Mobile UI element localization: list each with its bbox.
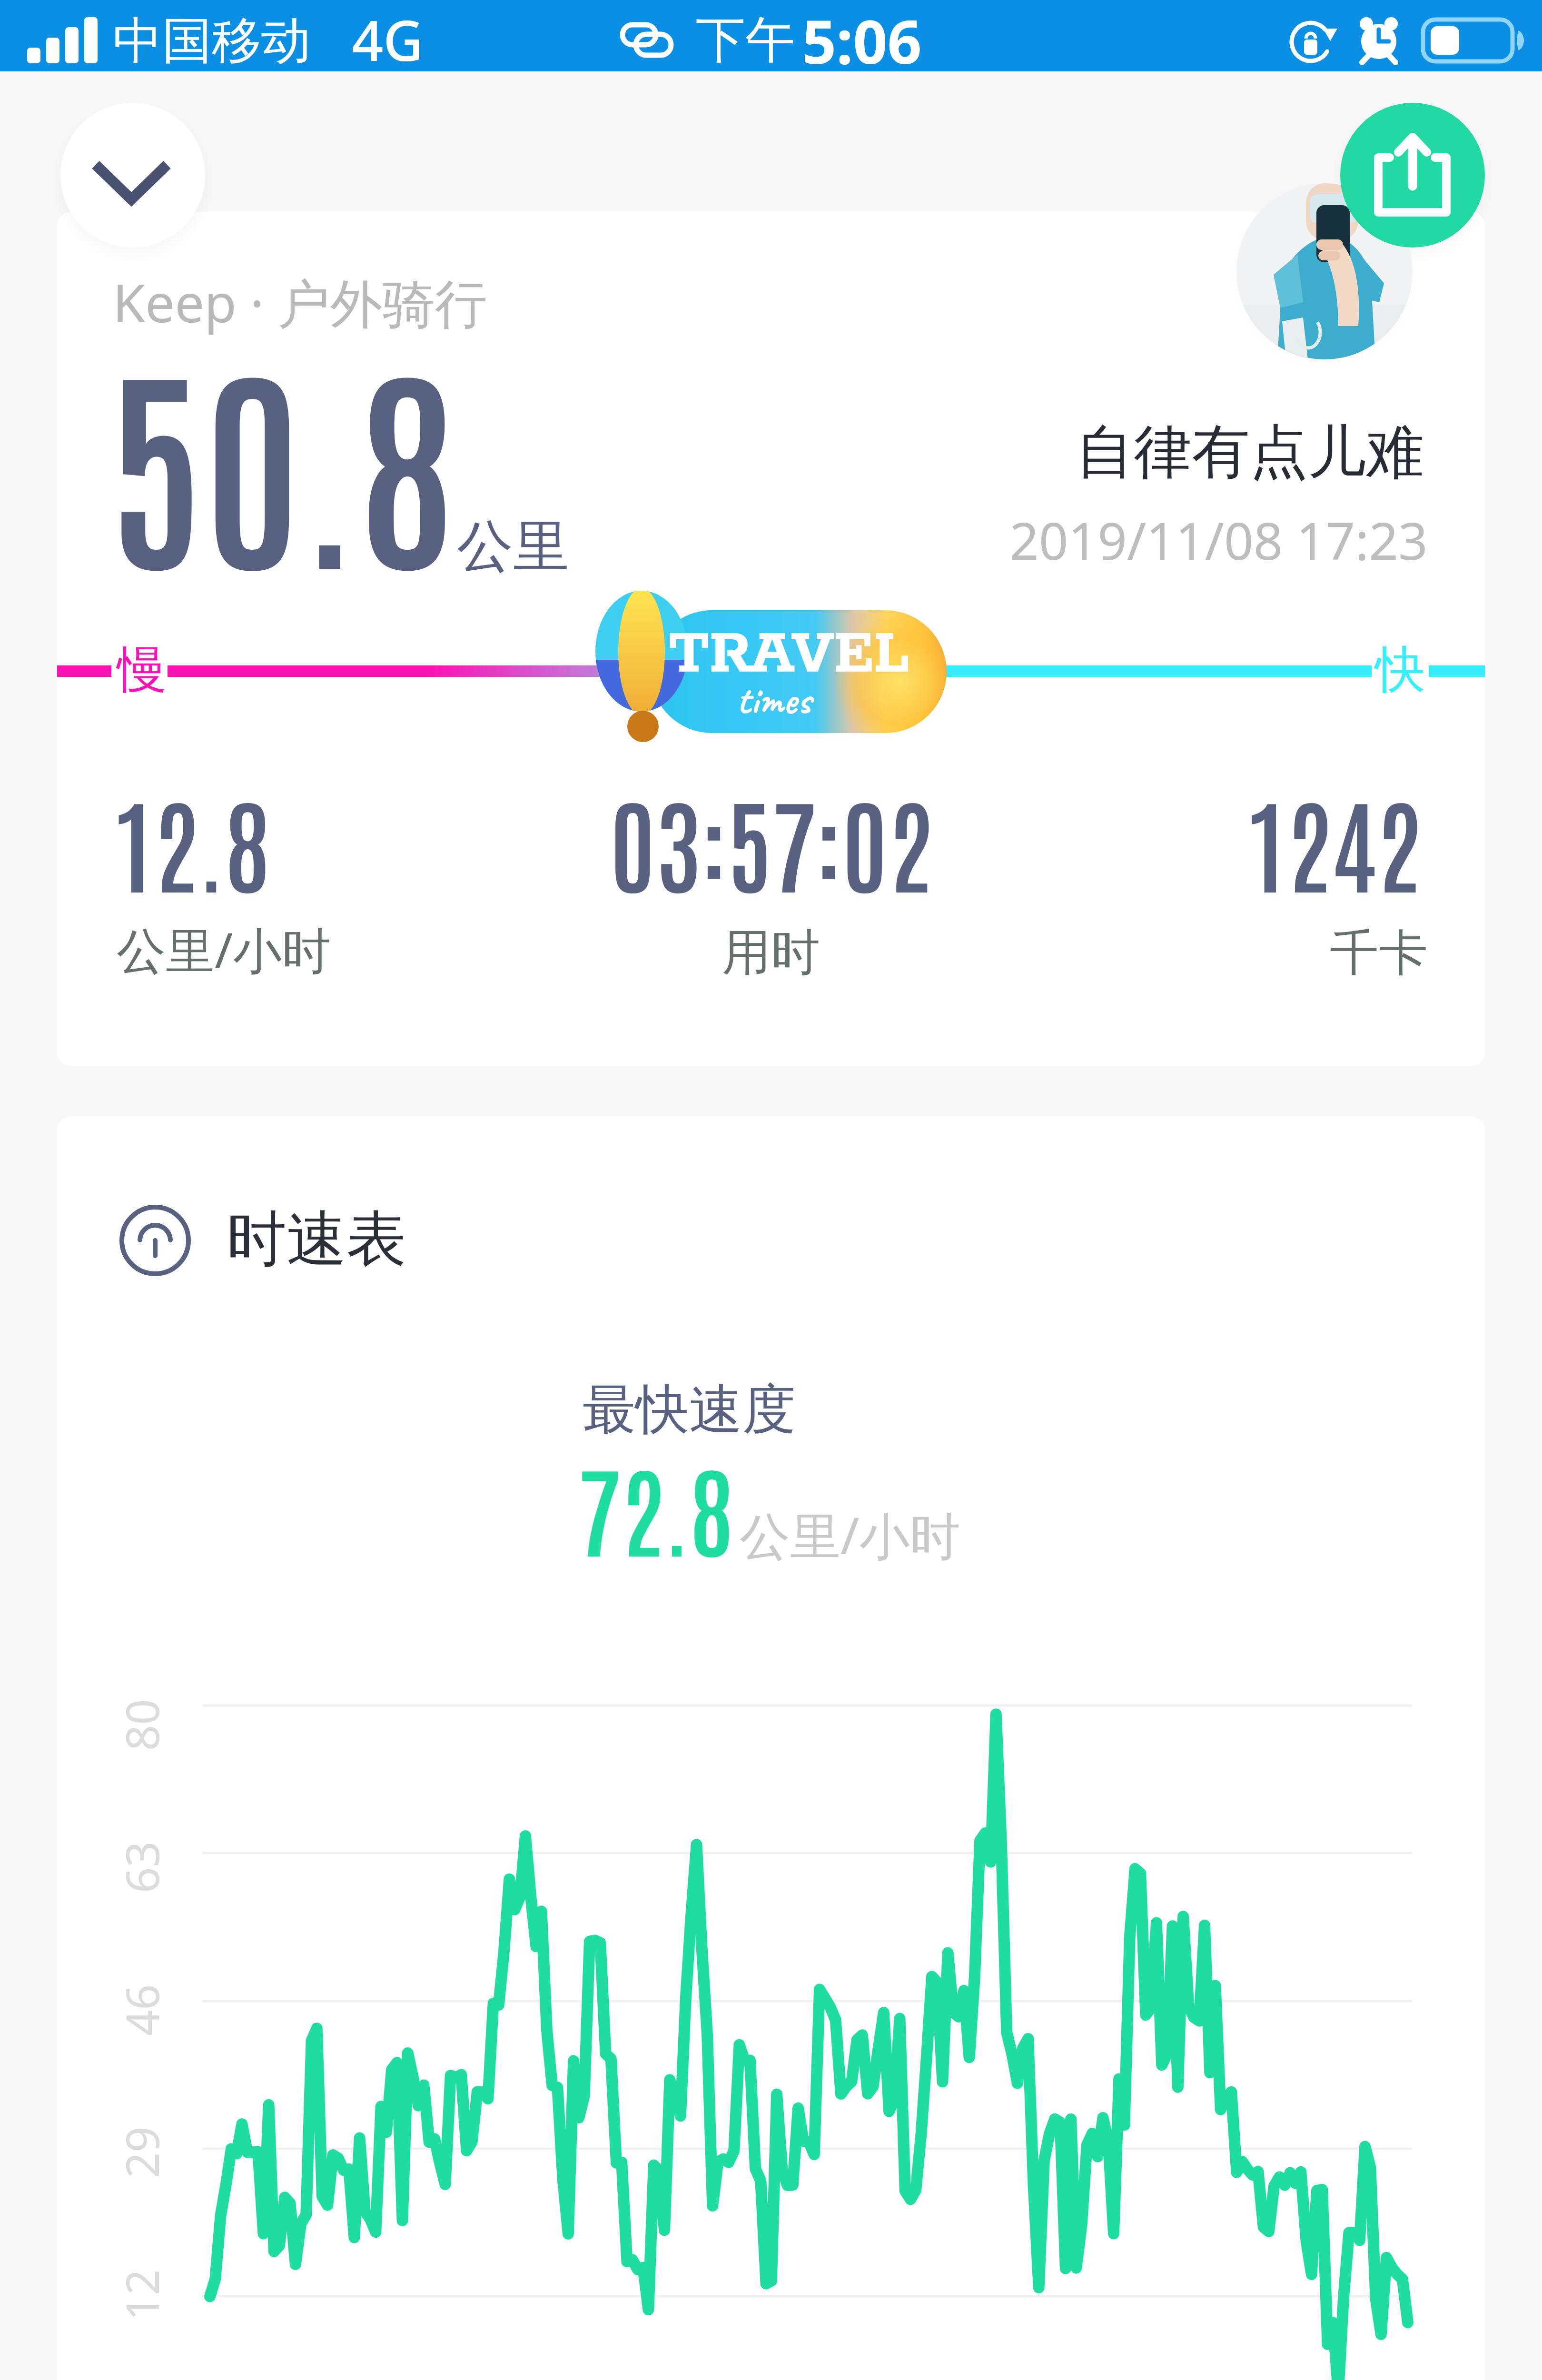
- staticText: 千卡: [1330, 922, 1428, 984]
- staticText: 自律有点儿难: [1076, 416, 1424, 489]
- staticText: 公里/小时: [740, 1500, 960, 1569]
- staticText: 用时: [722, 922, 820, 984]
- staticText: 5:06: [802, 0, 922, 71]
- staticText: TRAVEL: [669, 618, 910, 693]
- staticText: 46: [110, 1984, 172, 2036]
- staticText: 中国移动: [113, 10, 311, 72]
- button[interactable]: Collapse: [60, 103, 205, 248]
- staticText: 最快速度: [583, 1376, 796, 1443]
- staticText: 公里: [457, 511, 569, 582]
- staticText: 29: [110, 2126, 172, 2178]
- button[interactable]: Profile photo: [1236, 183, 1413, 359]
- staticText: Keep · 户外骑行: [113, 266, 487, 337]
- staticText: 12.8: [114, 774, 270, 907]
- staticText: 慢: [117, 639, 167, 701]
- staticText: 4G: [352, 2, 424, 73]
- staticText: 63: [110, 1841, 172, 1893]
- staticText: 下午: [696, 9, 795, 71]
- staticText: 时速表: [227, 1202, 406, 1278]
- staticText: 快: [1375, 639, 1425, 701]
- staticText: 72.8: [578, 1442, 733, 1570]
- staticText: 12: [110, 2269, 172, 2321]
- button[interactable]: Share: [1340, 103, 1485, 248]
- staticText: 80: [110, 1699, 172, 1751]
- staticText: 公里/小时: [117, 916, 331, 983]
- staticText: 1242: [1247, 774, 1422, 907]
- staticText: 2019/11/08 17:23: [1009, 505, 1428, 575]
- staticText: 50.8: [107, 315, 455, 599]
- staticText: times: [737, 674, 811, 725]
- staticText: 03:57:02: [610, 774, 933, 907]
